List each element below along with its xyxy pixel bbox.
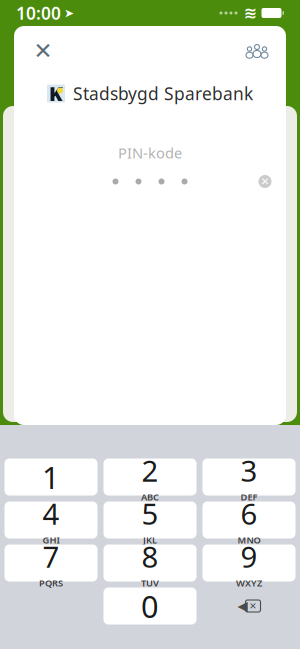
staticText: GHI bbox=[42, 534, 59, 546]
button[interactable]: 9 bbox=[202, 544, 295, 581]
button[interactable]: 7 bbox=[4, 544, 97, 581]
button[interactable]: 6 bbox=[202, 501, 295, 538]
staticText: PQRS bbox=[39, 577, 63, 589]
staticText: ✕ bbox=[260, 175, 269, 187]
staticText: ✕ bbox=[249, 601, 257, 611]
staticText: Stadsbygd Sparebank bbox=[73, 82, 253, 105]
button[interactable]: 0 bbox=[103, 587, 196, 624]
staticText: WXYZ bbox=[236, 577, 262, 589]
staticText: PIN-kode bbox=[118, 143, 182, 162]
staticText: K bbox=[49, 80, 63, 107]
staticText: 6 bbox=[240, 494, 257, 533]
staticText: MNO bbox=[237, 534, 260, 546]
staticText: 0 bbox=[141, 586, 159, 626]
button[interactable]: 8 bbox=[103, 544, 196, 581]
staticText: ✕ bbox=[33, 38, 52, 64]
staticText: 3 bbox=[240, 451, 257, 490]
staticText: JKL bbox=[143, 534, 157, 546]
button[interactable]: Clear PIN bbox=[250, 166, 280, 196]
staticText: 9 bbox=[240, 537, 257, 576]
staticText: 1 bbox=[42, 457, 60, 497]
button[interactable]: 5 bbox=[103, 501, 196, 538]
staticText: DEF bbox=[240, 491, 257, 503]
button[interactable]: 4 bbox=[4, 501, 97, 538]
staticText: ◀ bbox=[237, 598, 247, 613]
button[interactable]: Close bbox=[26, 34, 60, 68]
staticText: TUV bbox=[141, 577, 159, 589]
staticText: 5 bbox=[141, 494, 158, 533]
button[interactable]: Delete bbox=[202, 587, 295, 624]
staticText: ABC bbox=[141, 491, 159, 503]
staticText: 4 bbox=[42, 494, 59, 533]
staticText: 8 bbox=[141, 537, 158, 576]
staticText: 2 bbox=[141, 451, 158, 490]
button[interactable]: 1 bbox=[4, 458, 97, 495]
button[interactable]: 2 bbox=[103, 458, 196, 495]
button[interactable]: Switch user bbox=[240, 36, 274, 66]
staticText: ➤ bbox=[64, 6, 74, 20]
staticText: 7 bbox=[42, 537, 59, 576]
staticText: ≋ bbox=[243, 4, 256, 22]
button[interactable]: 3 bbox=[202, 458, 295, 495]
staticText: 10:00 bbox=[16, 1, 61, 24]
